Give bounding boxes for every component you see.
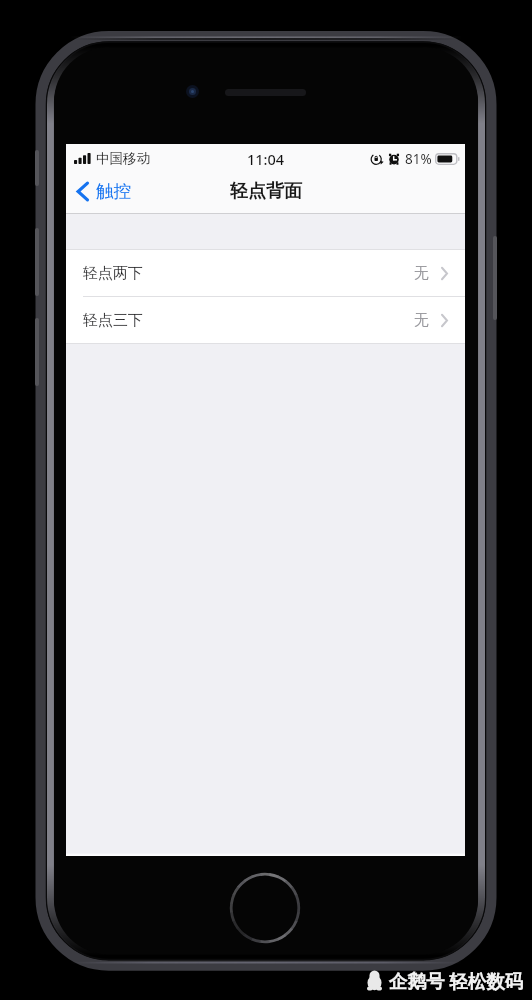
other: QQ logo <box>367 970 382 991</box>
staticText: 轻点三下 <box>83 311 143 330</box>
staticText: 无 <box>414 264 429 283</box>
staticText: 轻点两下 <box>83 264 143 283</box>
staticText: 11:04 <box>247 149 285 169</box>
button[interactable]: 轻点两下 <box>66 250 465 296</box>
staticText: 81% <box>405 150 432 168</box>
button[interactable]: 触控 <box>66 175 141 207</box>
staticText: 企鹅号 轻松数码 <box>389 968 524 993</box>
other: Battery 81 percent <box>435 153 460 165</box>
staticText: 触控 <box>96 180 131 202</box>
other: Alarm <box>388 153 400 165</box>
other: Rotation lock <box>371 153 384 165</box>
staticText: 中国移动 <box>96 150 150 167</box>
staticText: 无 <box>414 311 429 330</box>
button[interactable]: 轻点三下 <box>66 297 465 343</box>
staticText: 轻点背面 <box>230 180 302 203</box>
other: Home <box>229 872 301 944</box>
